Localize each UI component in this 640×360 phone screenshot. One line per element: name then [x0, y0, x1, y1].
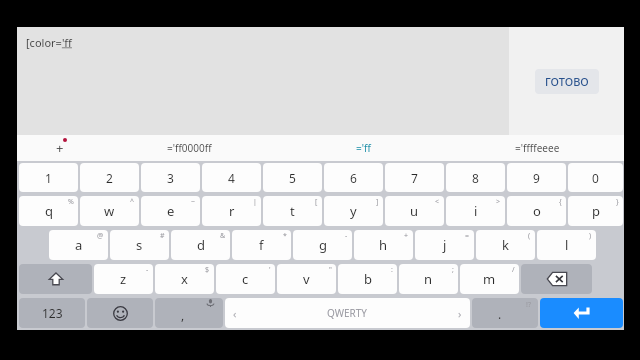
staticText: ГОТОВО — [545, 74, 589, 89]
button[interactable]: k — [476, 230, 535, 260]
button[interactable]: x — [155, 264, 214, 294]
button[interactable]: g — [293, 230, 352, 260]
button[interactable]: . — [472, 298, 538, 328]
staticText: y — [350, 202, 357, 220]
staticText: › — [458, 306, 462, 321]
button[interactable]: Space — [225, 298, 470, 328]
button[interactable]: u — [385, 196, 444, 226]
button[interactable]: v — [277, 264, 336, 294]
button[interactable]: 7 — [385, 163, 444, 192]
staticText: 123 — [42, 305, 63, 321]
staticText: i — [474, 202, 478, 220]
staticText: - — [146, 265, 149, 275]
button[interactable]: i — [446, 196, 505, 226]
staticText: 3 — [167, 170, 174, 186]
button[interactable]: ='ff0000ff — [103, 135, 276, 161]
staticText: ) — [589, 231, 592, 241]
staticText: x — [181, 270, 188, 288]
button[interactable]: 1 — [19, 163, 78, 192]
staticText: w — [104, 202, 115, 220]
staticText: + — [404, 231, 409, 241]
button[interactable]: ='ffffeeee — [450, 135, 624, 161]
staticText: l — [565, 236, 569, 254]
button[interactable]: a — [49, 230, 108, 260]
button[interactable]: Enter — [540, 298, 623, 328]
staticText: ; — [452, 265, 454, 275]
staticText: < — [435, 197, 440, 207]
button[interactable]: d — [171, 230, 230, 260]
button[interactable]: Add — [17, 135, 103, 161]
button[interactable]: ='ff — [276, 135, 450, 161]
staticText: s — [136, 236, 143, 254]
staticText: / — [512, 265, 515, 275]
button[interactable]: h — [354, 230, 413, 260]
button[interactable]: 4 — [202, 163, 261, 192]
staticText: ‹ — [233, 306, 237, 321]
staticText: d — [197, 236, 205, 254]
staticText: ' — [269, 265, 271, 275]
button[interactable]: p — [568, 196, 623, 226]
button[interactable] — [521, 264, 592, 294]
staticText: h — [379, 236, 388, 254]
button[interactable]: c — [216, 264, 275, 294]
staticText: [ — [315, 197, 318, 207]
staticText: % — [68, 197, 74, 207]
staticText: j — [443, 236, 447, 254]
button[interactable]: 0 — [568, 163, 623, 192]
staticText: a — [75, 236, 83, 254]
staticText: * — [283, 231, 287, 241]
staticText: ='ffffeeee — [515, 141, 560, 155]
button[interactable]: 123 — [19, 298, 85, 328]
button[interactable]: 6 — [324, 163, 383, 192]
button[interactable]: b — [338, 264, 397, 294]
staticText: !? — [526, 300, 531, 310]
staticText: | — [253, 197, 257, 207]
staticText: } — [616, 197, 619, 207]
staticText: c — [242, 270, 249, 288]
button[interactable]: 2 — [80, 163, 139, 192]
staticText: ='ff — [356, 141, 371, 155]
staticText: - — [345, 231, 348, 241]
staticText: ( — [528, 231, 531, 241]
staticText: q — [45, 202, 53, 220]
button[interactable]: 3 — [141, 163, 200, 192]
staticText: 2 — [106, 170, 113, 186]
staticText: 8 — [472, 170, 479, 186]
button[interactable]: 8 — [446, 163, 505, 192]
staticText: ~ — [191, 197, 196, 207]
button[interactable] — [19, 264, 92, 294]
staticText: ^ — [130, 197, 135, 207]
button[interactable]: n — [399, 264, 458, 294]
button[interactable]: l — [537, 230, 596, 260]
button[interactable]: [color='ff — [17, 27, 509, 135]
button[interactable]: o — [507, 196, 566, 226]
button[interactable]: j — [415, 230, 474, 260]
button[interactable]: f — [232, 230, 291, 260]
button[interactable]: r — [202, 196, 261, 226]
staticText: m — [483, 270, 496, 288]
staticText: f — [259, 236, 264, 254]
button[interactable]: m — [460, 264, 519, 294]
button[interactable]: s — [110, 230, 169, 260]
button[interactable]: , — [155, 298, 223, 328]
staticText: # — [160, 231, 165, 241]
staticText: 0 — [592, 170, 599, 186]
staticText: [color='ff — [26, 35, 72, 50]
staticText: e — [167, 202, 175, 220]
button[interactable]: 9 — [507, 163, 566, 192]
staticText: v — [303, 270, 310, 288]
button[interactable]: e — [141, 196, 200, 226]
button[interactable] — [87, 298, 153, 328]
button[interactable]: w — [80, 196, 139, 226]
staticText: & — [220, 231, 226, 241]
button[interactable]: y — [324, 196, 383, 226]
button[interactable]: 5 — [263, 163, 322, 192]
staticText: g — [319, 236, 327, 254]
button[interactable]: ГОТОВО — [535, 69, 599, 94]
staticText: " — [329, 265, 332, 275]
staticText: = — [465, 231, 470, 241]
staticText: ='ff0000ff — [167, 141, 212, 155]
button[interactable]: t — [263, 196, 322, 226]
button[interactable]: z — [94, 264, 153, 294]
button[interactable]: q — [19, 196, 78, 226]
